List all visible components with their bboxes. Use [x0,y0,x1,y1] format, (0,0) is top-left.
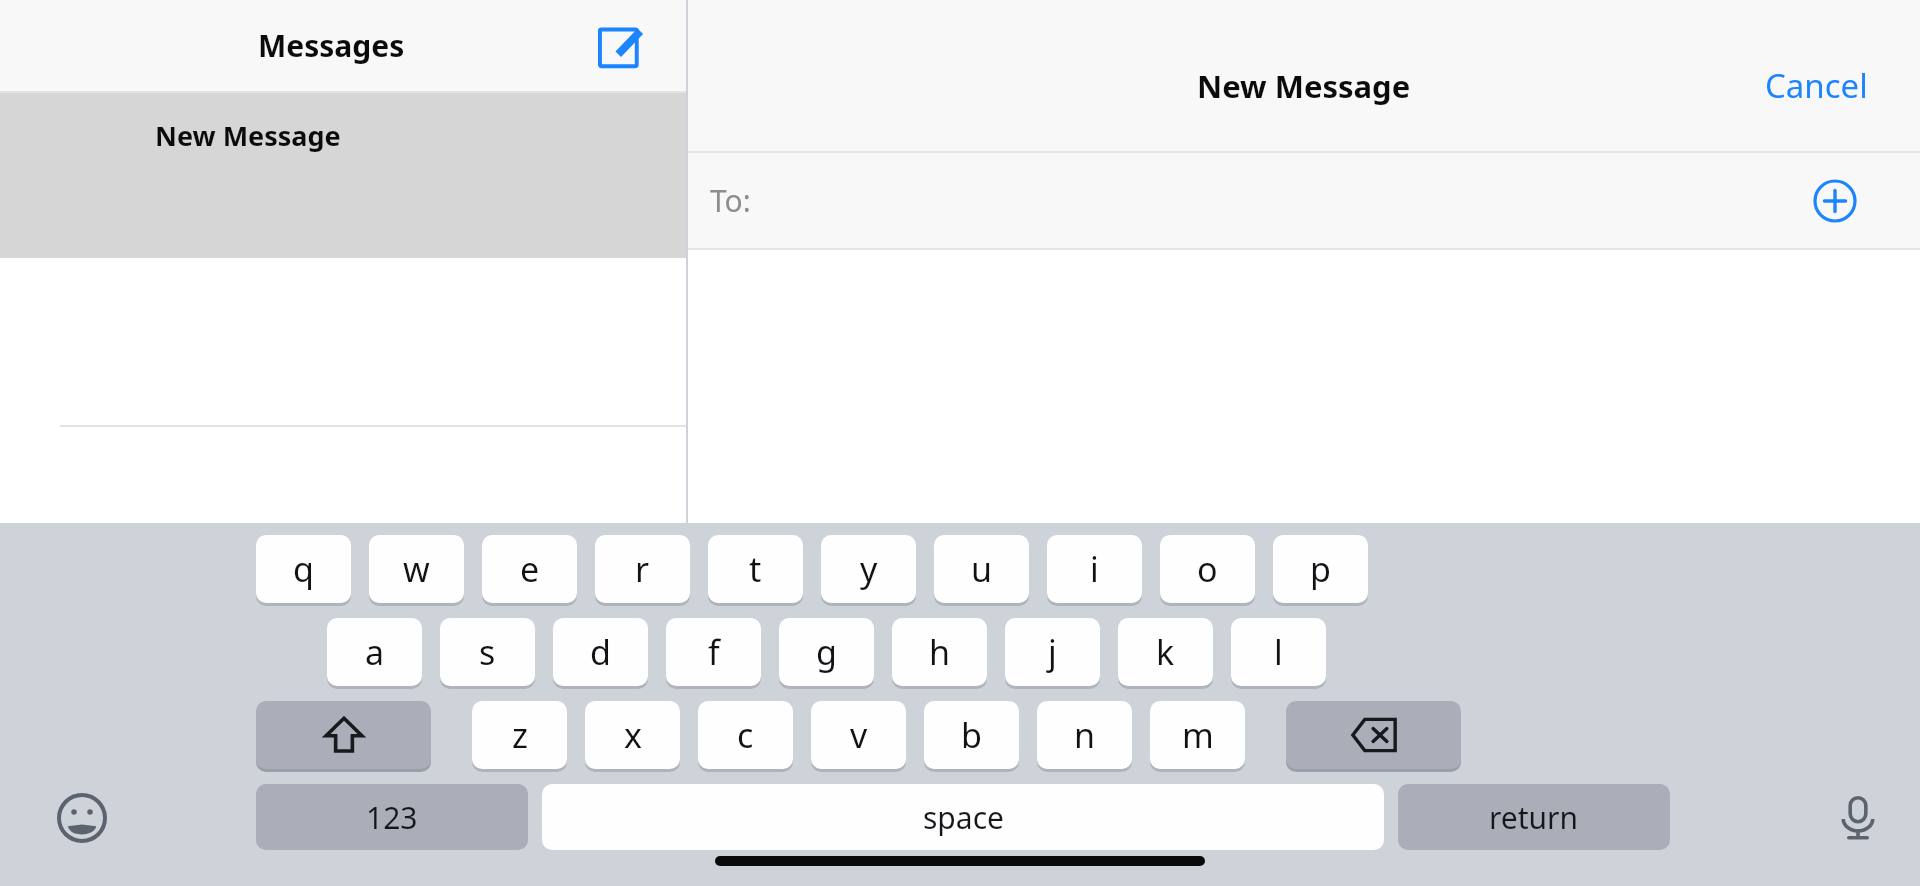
button[interactable]: return [1398,784,1670,850]
button[interactable]: Shift [256,701,431,769]
button[interactable]: New Message [0,93,686,258]
staticText: j [1048,629,1057,675]
button[interactable]: App Store [802,716,866,780]
staticText: New Message [1197,65,1411,107]
staticText: m [1182,712,1214,758]
button[interactable]: z [472,701,567,769]
button[interactable]: Dictation [1828,788,1888,848]
staticText: space [923,797,1004,838]
staticText: x [624,712,642,758]
staticText: h [929,629,951,675]
button[interactable]: Memoji [890,814,954,878]
button[interactable]: s [440,618,535,686]
button[interactable]: m [1150,701,1245,769]
button[interactable]: Cancel [1765,63,1868,108]
staticText: o [1197,546,1218,592]
button[interactable]: App Store [802,814,866,878]
staticText: a [365,629,385,675]
button[interactable]: e [482,535,577,603]
staticText: n [1074,712,1096,758]
staticText: q [293,546,314,592]
staticText: t [749,546,762,592]
staticText: z [512,712,528,758]
button[interactable]: Send [896,712,1894,784]
staticText: return [1489,797,1579,838]
button[interactable]: u [934,535,1029,603]
staticText: c [737,712,754,758]
button[interactable]: To: [688,153,1920,248]
staticText: i [1090,546,1099,592]
button[interactable]: Backspace [1286,701,1461,769]
button[interactable]: GarageBand [1252,814,1316,878]
button[interactable]: g [779,618,874,686]
button[interactable]: w [369,535,464,603]
staticText: Cancel [1765,63,1868,108]
button[interactable]: c [698,701,793,769]
button[interactable]: y [821,535,916,603]
staticText: New Message [155,117,341,154]
button[interactable]: j [1005,618,1100,686]
staticText: r [635,546,650,592]
staticText: y [860,546,878,592]
button[interactable]: Messages [0,0,686,91]
staticText: e [520,546,540,592]
button[interactable]: h [892,618,987,686]
button[interactable]: n [1037,701,1132,769]
button[interactable]: x [585,701,680,769]
staticText: w [403,546,430,592]
staticText: To: [710,180,751,221]
button[interactable]: d [553,618,648,686]
button[interactable]: o [1160,535,1255,603]
button[interactable]: k [1118,618,1213,686]
button[interactable]: b [924,701,1019,769]
button[interactable]: a [327,618,422,686]
button[interactable]: space [542,784,1384,850]
staticText: d [590,629,611,675]
staticText: k [1156,629,1175,675]
staticText: g [816,629,837,675]
button[interactable]: Emoji keyboard [52,788,112,848]
staticText: s [479,629,496,675]
button[interactable]: 123 [256,784,528,850]
button[interactable]: p [1273,535,1368,603]
button[interactable]: v [811,701,906,769]
staticText: b [961,712,982,758]
staticText: v [850,712,868,758]
button[interactable]: t [708,535,803,603]
button[interactable]: r [595,535,690,603]
staticText: Messages [258,25,405,66]
button[interactable]: Image search [978,814,1042,878]
button[interactable]: Compose new message [594,19,648,73]
button[interactable]: l [1231,618,1326,686]
button[interactable]: Camera [714,712,786,784]
staticText: l [1274,629,1283,675]
button[interactable]: Digital Touch [1154,814,1218,878]
staticText: p [1310,546,1331,592]
staticText: f [708,629,720,675]
button[interactable]: f [666,618,761,686]
button[interactable]: q [256,535,351,603]
staticText: 123 [366,797,418,838]
button[interactable]: More [1340,814,1404,878]
button[interactable]: i [1047,535,1142,603]
button[interactable]: Add contact [1812,178,1858,224]
button[interactable]: Music [1066,814,1130,878]
staticText: u [971,546,993,592]
button[interactable]: Photos [714,814,778,878]
